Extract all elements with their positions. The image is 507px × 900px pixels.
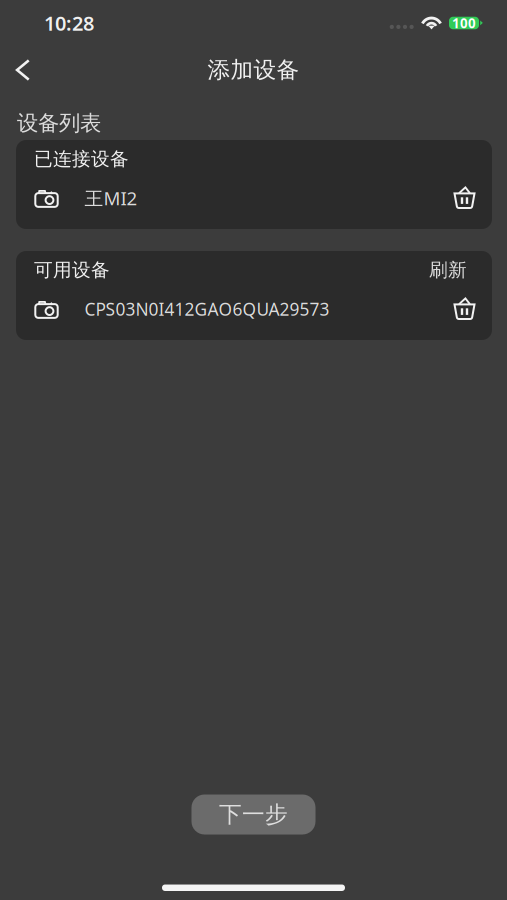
staticText: 设备列表 [17, 110, 101, 136]
staticText: CPS03N0I412GAO6QUA29573 [84, 297, 329, 320]
button[interactable]: 王MI2 [14, 178, 438, 218]
button[interactable]: 下一步 [191, 794, 315, 834]
staticText: 下一步 [219, 801, 288, 828]
staticText: 刷新 [429, 258, 467, 281]
staticText: 可用设备 [34, 258, 110, 281]
staticText: 已连接设备 [34, 147, 129, 170]
button[interactable]: CPS03N0I412GAO6QUA29573 [14, 289, 438, 329]
staticText: 10:28 [44, 10, 94, 36]
staticText: 100 [452, 14, 476, 32]
staticText: 添加设备 [207, 56, 299, 84]
button[interactable]: Back [1, 48, 45, 92]
staticText: 王MI2 [84, 186, 137, 210]
button[interactable]: Delete device [438, 178, 490, 218]
button[interactable]: 刷新 [429, 258, 467, 281]
button[interactable]: Delete device [438, 289, 490, 329]
